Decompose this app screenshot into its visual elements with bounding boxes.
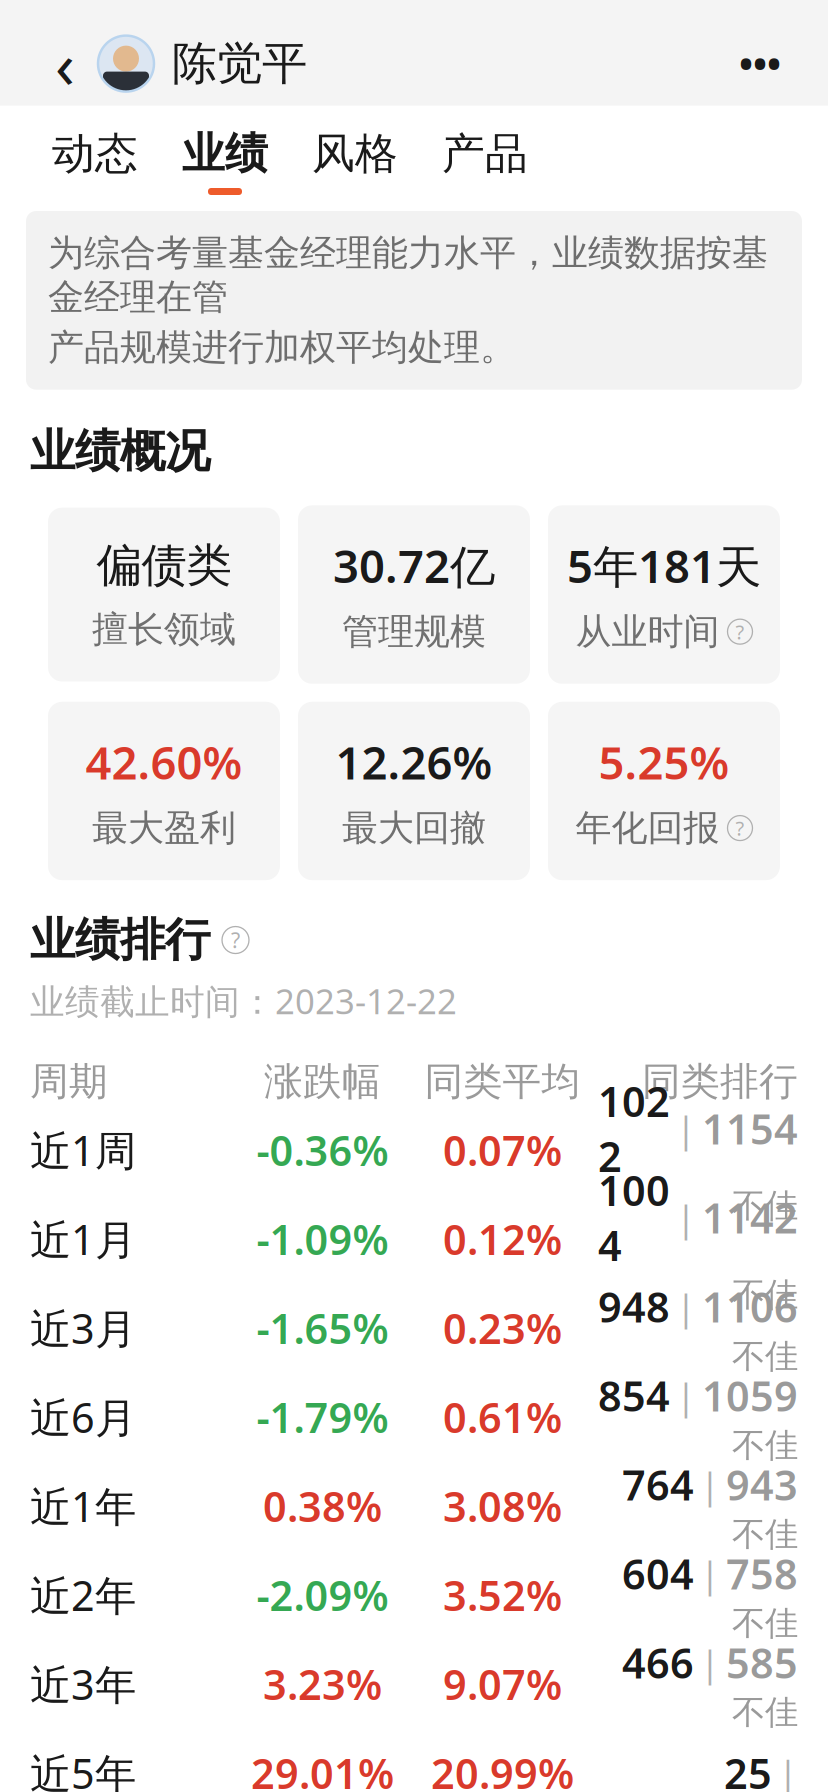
button[interactable]: 42.60% (48, 702, 280, 880)
button[interactable]: 业绩 (160, 118, 290, 205)
staticText: 29.01% (251, 1745, 394, 1792)
staticText: 近2年 (30, 1567, 136, 1622)
button[interactable]: 5年181天 (548, 505, 780, 684)
staticText: 陈觉平 (172, 36, 307, 91)
button[interactable]: 偏债类 (48, 508, 280, 681)
staticText: | (676, 1371, 696, 1419)
staticText: 业绩 (182, 128, 268, 180)
staticText: 最大盈利 (92, 806, 236, 850)
staticText: 同类排行 (642, 1058, 798, 1105)
staticText: ‹ (55, 21, 75, 106)
staticText: ? (735, 815, 744, 841)
staticText: | (676, 1193, 696, 1241)
staticText: 近1年 (30, 1478, 136, 1533)
staticText: 943 (726, 1457, 798, 1512)
staticText: 业绩概况 (30, 424, 210, 479)
staticText: 偏债类 (96, 538, 231, 593)
staticText: 3.08% (443, 1478, 562, 1533)
staticText: 9.07% (443, 1656, 562, 1711)
staticText: 5年181天 (567, 535, 761, 595)
staticText: 近6月 (30, 1389, 136, 1444)
staticText: 不佳 (732, 1336, 798, 1377)
staticText: 同类平均 (424, 1058, 580, 1105)
staticText: 最大回撤 (342, 806, 486, 850)
staticText: 1004 (598, 1162, 670, 1272)
staticText: 从业时间 (575, 609, 719, 654)
staticText: 业绩排行 (30, 912, 210, 968)
staticText: 0.23% (443, 1300, 562, 1355)
staticText: 风格 (312, 128, 398, 180)
staticText: 1154 (702, 1101, 798, 1156)
staticText: 动态 (52, 128, 138, 180)
staticText: 近5年 (30, 1745, 136, 1792)
button[interactable]: 5.25% (548, 702, 780, 880)
staticText: 758 (726, 1546, 798, 1601)
staticText: 5.25% (598, 732, 729, 792)
staticText: 25 (724, 1745, 772, 1792)
staticText: -1.09% (256, 1211, 388, 1266)
staticText: 0.07% (443, 1122, 562, 1177)
staticText: 涨跌幅 (264, 1058, 381, 1105)
staticText: 3.23% (263, 1656, 382, 1711)
button[interactable]: 风格 (290, 118, 420, 205)
staticText: 为综合考量基金经理能力水平，业绩数据按基金经理在管 (48, 231, 768, 319)
staticText: ? (735, 618, 744, 645)
staticText: | (700, 1638, 720, 1686)
staticText: 不佳 (732, 1603, 798, 1644)
staticText: 1106 (702, 1279, 798, 1334)
staticText: 1022 (598, 1073, 670, 1183)
staticText: | (676, 1104, 696, 1152)
staticText: 764 (622, 1457, 694, 1512)
staticText: 1142 (702, 1190, 798, 1245)
staticText: 42.60% (85, 732, 242, 792)
staticText: -1.65% (256, 1300, 388, 1355)
button[interactable]: 30.72亿 (298, 505, 530, 684)
staticText: 不佳 (732, 1425, 798, 1466)
staticText: 12.26% (335, 732, 492, 792)
staticText: 585 (726, 1635, 798, 1690)
button[interactable]: More options (728, 32, 792, 96)
staticText: | (778, 1749, 798, 1792)
staticText: 业绩截止时间：2023-12-22 (30, 978, 457, 1024)
staticText: 产品 (442, 128, 528, 180)
staticText: 30.72亿 (333, 535, 495, 595)
staticText: ••• (739, 39, 781, 88)
staticText: 不佳 (732, 1692, 798, 1733)
staticText: 产品规模进行加权平均处理。 (48, 325, 516, 370)
staticText: -1.79% (256, 1389, 388, 1444)
staticText: | (700, 1549, 720, 1597)
staticText: | (676, 1282, 696, 1330)
button[interactable]: About performance ranking (222, 926, 249, 953)
staticText: 周期 (30, 1058, 108, 1105)
staticText: 近1月 (30, 1211, 136, 1266)
button[interactable]: 动态 (30, 118, 160, 205)
staticText: 854 (598, 1368, 670, 1423)
staticText: -2.09% (256, 1567, 388, 1622)
staticText: 3.52% (443, 1567, 562, 1622)
staticText: ? (231, 926, 240, 954)
staticText: 近1周 (30, 1122, 136, 1177)
button[interactable]: Back (36, 32, 94, 96)
staticText: 0.61% (443, 1389, 562, 1444)
staticText: 1059 (702, 1368, 798, 1423)
staticText: 0.38% (263, 1478, 382, 1533)
staticText: 年化回报 (575, 806, 719, 850)
staticText: 不佳 (732, 1185, 798, 1226)
staticText: 管理规模 (342, 609, 486, 654)
staticText: 466 (622, 1635, 694, 1690)
staticText: 948 (598, 1279, 670, 1334)
button[interactable]: 产品 (420, 118, 550, 205)
staticText: -0.36% (256, 1122, 388, 1177)
staticText: 20.99% (431, 1745, 574, 1792)
staticText: 近3年 (30, 1656, 136, 1711)
staticText: 604 (622, 1546, 694, 1601)
staticText: 近3月 (30, 1300, 136, 1355)
staticText: 不佳 (732, 1274, 798, 1315)
staticText: 不佳 (732, 1514, 798, 1555)
staticText: 0.12% (443, 1211, 562, 1266)
staticText: | (700, 1460, 720, 1508)
button[interactable]: 12.26% (298, 702, 530, 880)
staticText: 擅长领域 (92, 607, 236, 651)
